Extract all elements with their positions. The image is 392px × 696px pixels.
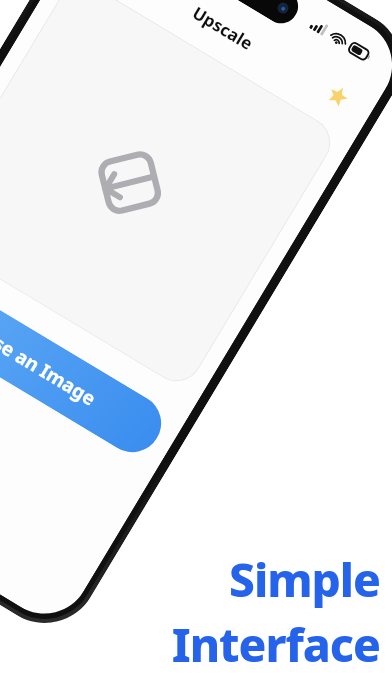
button[interactable]: Pro [317,76,358,117]
staticText: Interface [171,613,380,676]
staticText: Upscale [188,1,258,55]
staticText: Choose an Image [0,305,101,412]
staticText: Simple [229,548,380,611]
button[interactable] [0,0,340,391]
button[interactable]: Choose an Image [0,254,172,463]
